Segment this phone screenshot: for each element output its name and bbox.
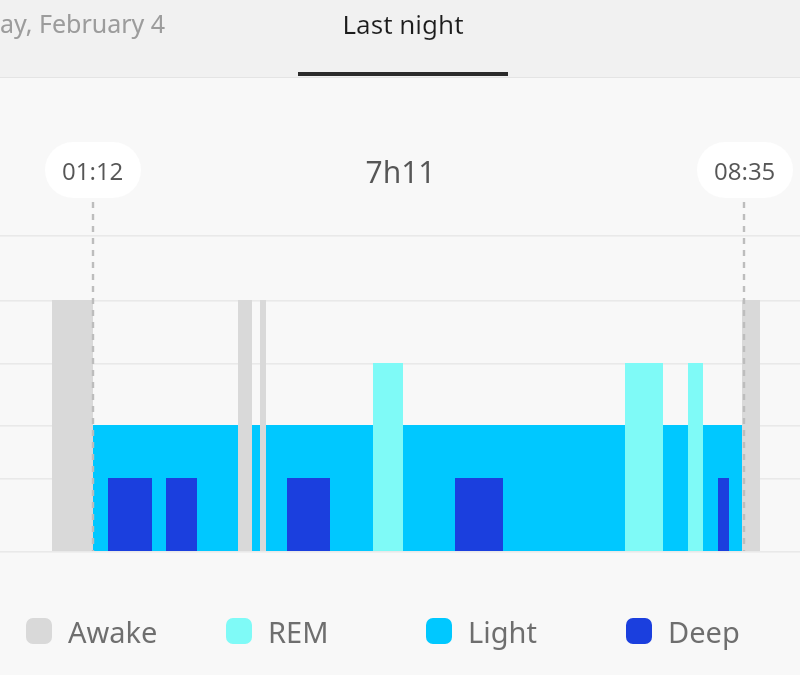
staticText: ay, February 4 (0, 6, 166, 40)
button[interactable]: Last night (298, 0, 508, 78)
button[interactable]: Light (400, 587, 600, 675)
staticText: Deep (668, 612, 740, 651)
staticText: REM (268, 612, 329, 651)
staticText: 7h11 (365, 151, 436, 192)
button[interactable]: Deep (600, 587, 800, 675)
staticText: 01:12 (62, 154, 124, 187)
button[interactable]: REM (200, 587, 400, 675)
button[interactable]: 08:35 (697, 142, 793, 198)
button[interactable]: ay, February 4 (0, 0, 230, 78)
staticText: Light (468, 612, 537, 651)
staticText: Last night (298, 6, 508, 41)
staticText: 08:35 (714, 154, 776, 187)
button[interactable]: Awake (0, 587, 200, 675)
staticText: Awake (68, 612, 158, 651)
button[interactable]: 01:12 (45, 142, 141, 198)
